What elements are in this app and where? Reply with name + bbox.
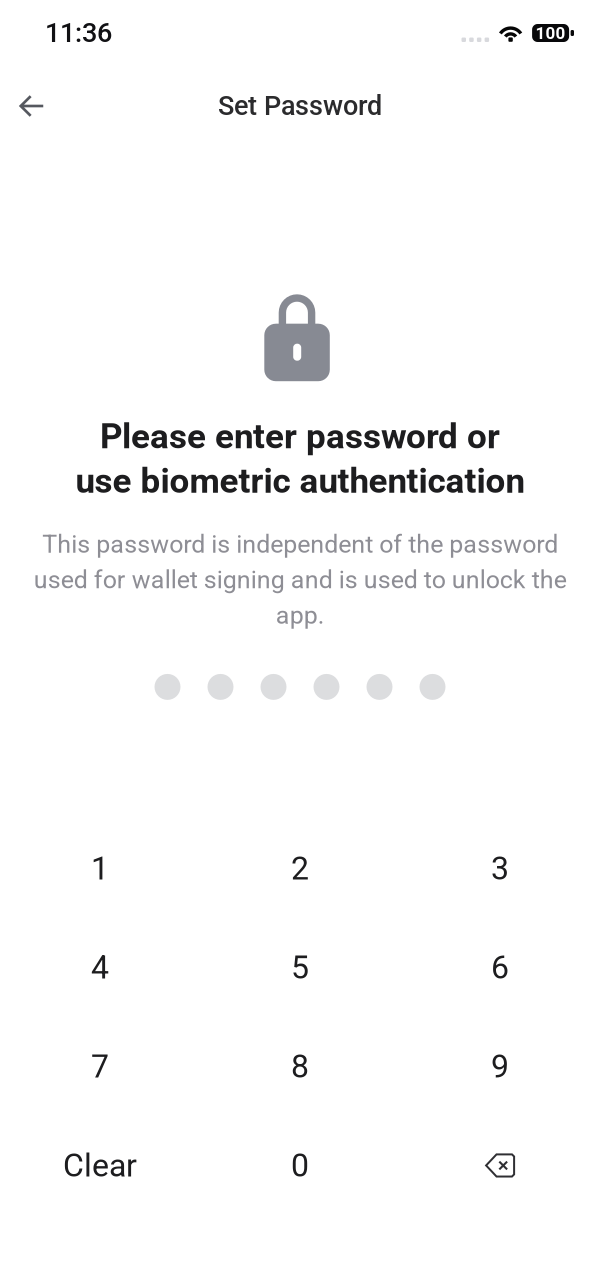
staticText: 0: [291, 1147, 309, 1184]
button[interactable]: 5: [200, 918, 400, 1017]
staticText: Please enter password or: [100, 416, 500, 457]
button[interactable]: 9: [400, 1017, 600, 1116]
staticText: 7: [91, 1048, 109, 1085]
staticText: Set Password: [218, 90, 382, 122]
button[interactable]: 7: [0, 1017, 200, 1116]
staticText: 8: [291, 1048, 309, 1085]
staticText: 11:36: [45, 17, 112, 49]
staticText: 3: [491, 850, 509, 887]
button[interactable]: 2: [200, 819, 400, 918]
staticText: 2: [291, 850, 309, 887]
button[interactable]: 8: [200, 1017, 400, 1116]
staticText: 4: [91, 949, 109, 986]
staticText: 5: [291, 949, 309, 986]
button[interactable]: 0: [200, 1116, 400, 1215]
button[interactable]: 3: [400, 819, 600, 918]
staticText: 6: [491, 949, 509, 986]
button[interactable]: Clear: [0, 1116, 200, 1215]
button[interactable]: 6: [400, 918, 600, 1017]
button[interactable]: Delete: [400, 1116, 600, 1215]
button[interactable]: Back: [0, 75, 64, 137]
staticText: 9: [491, 1048, 509, 1085]
button[interactable]: 1: [0, 819, 200, 918]
staticText: 100: [536, 23, 566, 43]
staticText: This password is independent of the pass…: [33, 529, 566, 630]
staticText: use biometric authentication: [75, 461, 524, 501]
button[interactable]: 4: [0, 918, 200, 1017]
staticText: 1: [91, 850, 109, 887]
staticText: Clear: [63, 1147, 137, 1184]
